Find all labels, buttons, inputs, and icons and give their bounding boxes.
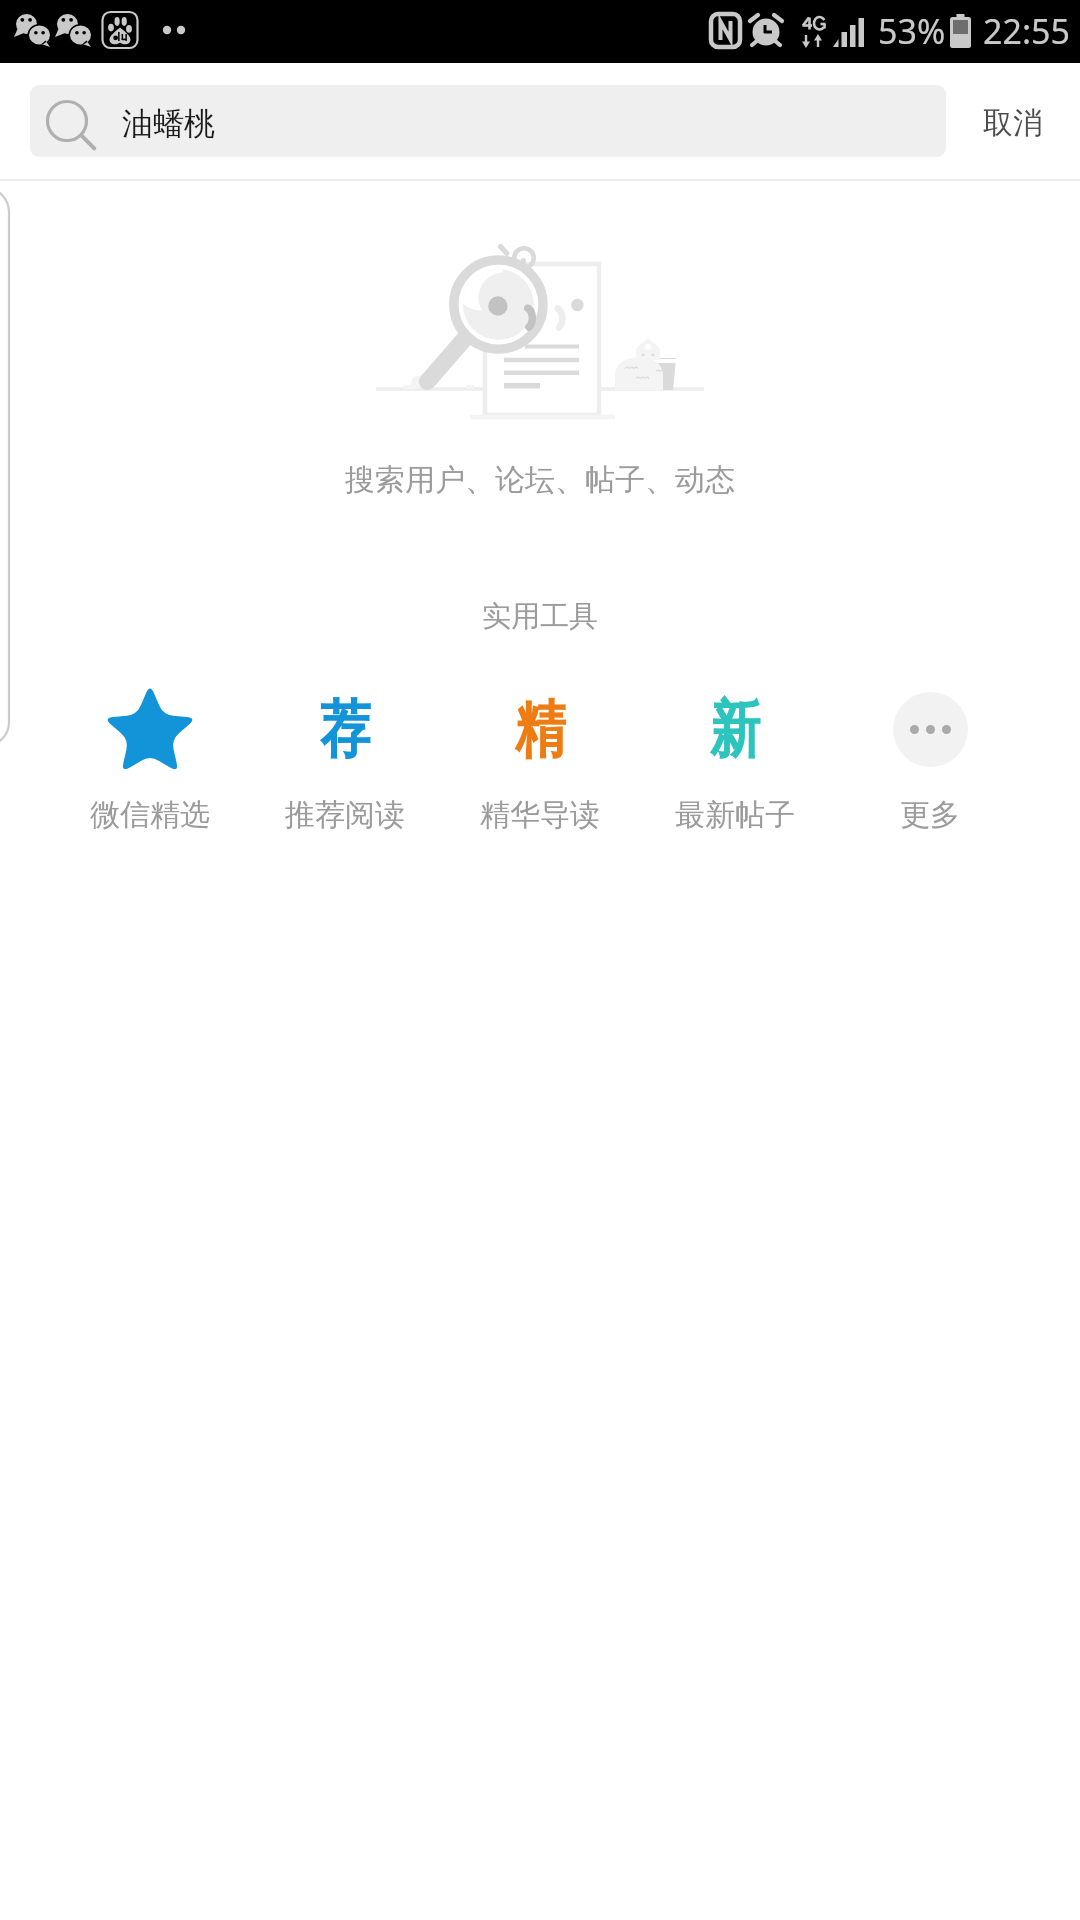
staticText: 22:55 (983, 8, 1070, 54)
button[interactable]: 新 (638, 682, 832, 837)
staticText: 推荐阅读 (285, 796, 405, 834)
staticText: 油蟠桃 (122, 104, 215, 143)
button[interactable]: 更多 (833, 682, 1027, 837)
staticText: 更多 (900, 796, 960, 834)
staticText: 搜索用户、论坛、帖子、动态 (345, 461, 735, 499)
button[interactable] (30, 85, 946, 157)
staticText: 取消 (983, 104, 1043, 142)
staticText: 精 (515, 690, 565, 768)
button[interactable]: 微信精选 (53, 682, 247, 837)
staticText: 新 (710, 690, 760, 768)
button[interactable]: 荐 (248, 682, 442, 837)
other: 更多 (893, 692, 968, 767)
staticText: 荐 (320, 690, 370, 768)
staticText: 实用工具 (482, 598, 598, 635)
staticText: 最新帖子 (675, 796, 795, 834)
staticText: 精华导读 (480, 796, 600, 834)
button[interactable]: 精 (443, 682, 637, 837)
staticText: 微信精选 (90, 796, 210, 834)
button[interactable]: 取消 (946, 87, 1080, 159)
staticText: 53% (878, 8, 946, 54)
